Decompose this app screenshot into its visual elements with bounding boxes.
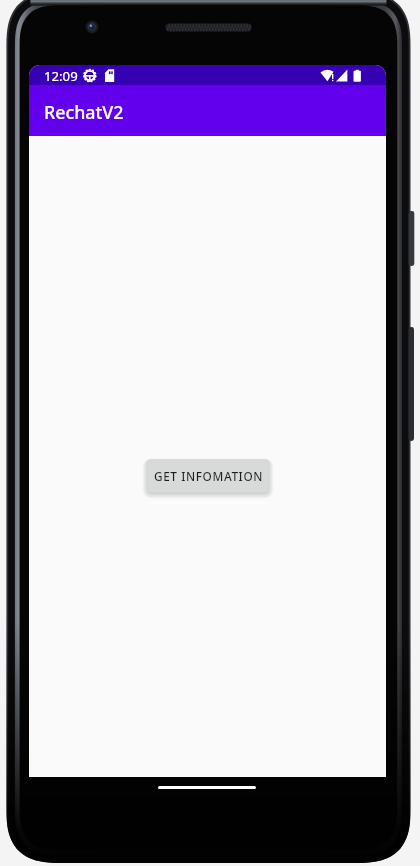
staticText: RechatV2	[44, 100, 124, 124]
button[interactable]: GET INFOMATION	[148, 459, 268, 492]
staticText: 12:09	[44, 67, 78, 85]
staticText: GET INFOMATION	[154, 468, 263, 484]
